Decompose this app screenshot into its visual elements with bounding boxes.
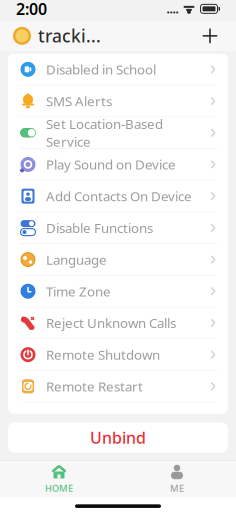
button[interactable]: Unbind — [8, 422, 228, 452]
staticText: Play Sound on Device — [46, 156, 176, 173]
staticText: Disabled in School — [46, 60, 156, 78]
button[interactable]: Disabled in School — [8, 54, 228, 85]
button[interactable]: Play Sound on Device — [8, 149, 228, 180]
staticText: ME — [170, 482, 184, 494]
staticText: .... — [166, 1, 178, 17]
staticText: Unbind — [90, 427, 146, 448]
staticText: Time Zone — [46, 282, 111, 300]
button[interactable]: Add device — [197, 23, 223, 49]
button[interactable]: Remote Shutdown — [8, 339, 228, 370]
button[interactable]: Reject Unknown Calls — [8, 307, 228, 338]
button[interactable]: ME — [118, 461, 236, 497]
staticText: Add Contacts On Device — [46, 187, 192, 205]
button[interactable]: Disable Functions — [8, 212, 228, 243]
button[interactable]: Add Contacts On Device — [8, 181, 228, 212]
button[interactable]: SMS Alerts — [8, 86, 228, 117]
staticText: SMS Alerts — [46, 92, 112, 110]
staticText: 2:00 — [16, 0, 47, 19]
staticText: Set Location-Based Service — [46, 115, 163, 150]
staticText: Language — [46, 251, 107, 268]
button[interactable]: HOME — [0, 461, 118, 497]
staticText: Disable Functions — [46, 219, 153, 237]
staticText: Remote Restart — [46, 377, 143, 395]
button[interactable]: Time Zone — [8, 276, 228, 307]
button[interactable]: Remote Restart — [8, 371, 228, 402]
staticText: HOME — [45, 482, 73, 494]
staticText: Reject Unknown Calls — [46, 314, 176, 332]
staticText: tracki... — [38, 24, 101, 47]
button[interactable]: Set Location-Based Service — [8, 117, 228, 148]
button[interactable]: Language — [8, 244, 228, 275]
staticText: Remote Shutdown — [46, 346, 160, 363]
